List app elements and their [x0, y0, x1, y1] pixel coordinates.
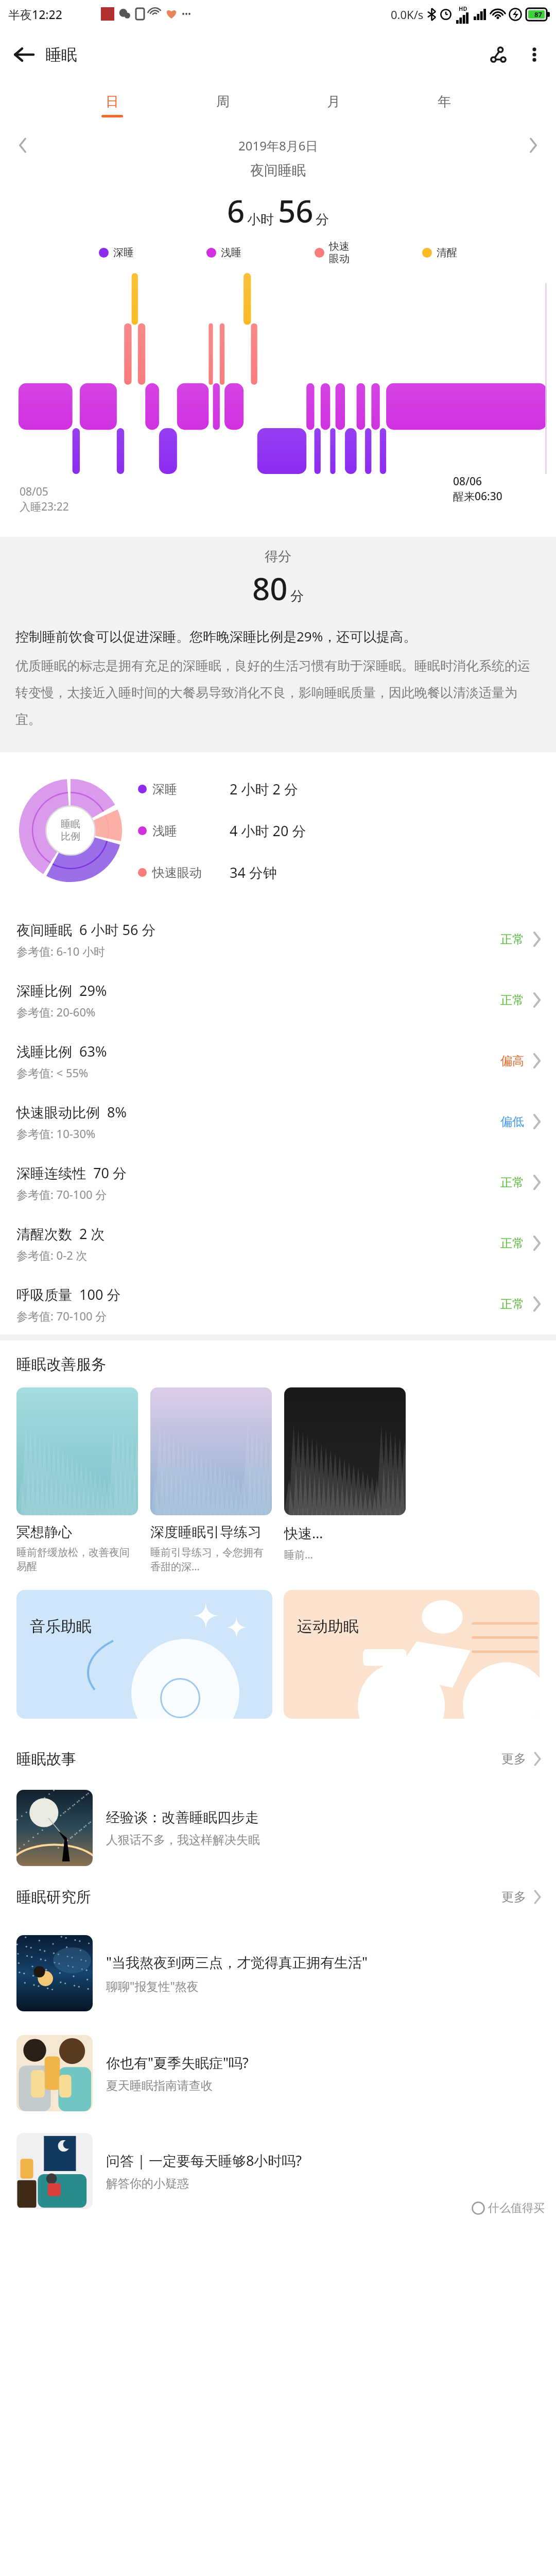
staticText: 参考值: 10-30%	[16, 1126, 96, 1141]
staticText: 偏高	[500, 1054, 524, 1069]
staticText: 睡前…	[284, 1548, 313, 1562]
button[interactable]: 睡眠研究所	[0, 1874, 556, 1920]
staticText: 80	[252, 567, 288, 609]
staticText: 更多	[501, 1751, 526, 1767]
staticText: 夜间睡眠	[250, 162, 306, 179]
button[interactable]: 睡眠故事	[0, 1736, 556, 1782]
button[interactable]: "当我熬夜到两三点，才觉得真正拥有生活"	[0, 1920, 556, 2027]
button[interactable]: 夜间睡眠 6 小时 56 分	[0, 909, 556, 970]
button[interactable]: 浅睡比例 63%	[0, 1030, 556, 1091]
staticText: 深睡比例 29%	[16, 981, 107, 1000]
button[interactable]: 年	[389, 81, 499, 129]
button[interactable]: Previous day	[8, 131, 37, 160]
staticText: 分	[290, 588, 304, 605]
staticText: 参考值: 6-10 小时	[16, 943, 106, 959]
staticText: 半夜12:22	[8, 6, 62, 22]
staticText: 更多	[501, 1889, 526, 1905]
staticText: 参考值: < 55%	[16, 1065, 89, 1080]
staticText: 56	[278, 190, 314, 232]
button[interactable]	[16, 1387, 138, 1515]
button[interactable]: 问答 | 一定要每天睡够8小时吗?	[0, 2120, 556, 2223]
staticText: 运动助眠	[297, 1617, 359, 1636]
staticText: 正常	[500, 1297, 524, 1312]
staticText: 清醒	[437, 246, 457, 259]
staticText: 解答你的小疑惑	[106, 2176, 189, 2191]
staticText: 正常	[500, 1236, 524, 1251]
staticText: 2 小时 2 分	[230, 779, 298, 799]
button[interactable]: 周	[167, 81, 278, 129]
staticText: 周	[216, 93, 230, 110]
staticText: 4 小时 20 分	[230, 821, 306, 840]
button[interactable]: Back	[4, 35, 43, 74]
staticText: 清醒次数 2 次	[16, 1224, 105, 1243]
button[interactable]: More options	[518, 38, 551, 71]
staticText: 什么值得买	[488, 2201, 545, 2215]
staticText: 参考值: 0-2 次	[16, 1247, 88, 1263]
staticText: 冥想静心	[16, 1523, 72, 1541]
staticText: HD	[459, 5, 467, 12]
button[interactable]: 你也有"夏季失眠症"吗?	[0, 2027, 556, 2120]
staticText: 你也有"夏季失眠症"吗?	[106, 2053, 249, 2072]
staticText: 浅睡比例 63%	[16, 1042, 107, 1061]
staticText: 睡眠	[61, 818, 80, 831]
staticText: 正常	[500, 932, 524, 947]
button[interactable]: Next day	[519, 131, 548, 160]
button[interactable]	[150, 1387, 272, 1515]
staticText: •••	[182, 8, 192, 20]
staticText: 浅睡	[152, 823, 230, 839]
staticText: 深睡	[152, 782, 230, 797]
staticText: 经验谈：改善睡眠四步走	[106, 1809, 259, 1826]
staticText: 深睡	[113, 246, 134, 259]
button[interactable]: Share	[479, 35, 518, 74]
button[interactable]: 呼吸质量 100 分	[0, 1274, 556, 1334]
staticText: 分	[316, 211, 329, 228]
button[interactable]	[284, 1387, 406, 1515]
button[interactable]: 日	[57, 81, 167, 129]
staticText: 参考值: 70-100 分	[16, 1308, 107, 1324]
staticText: 参考值: 20-60%	[16, 1004, 96, 1020]
staticText: 快速 眼动	[329, 240, 350, 265]
staticText: 睡前引导练习，令您拥有香甜的深…	[150, 1546, 272, 1573]
staticText: 6	[227, 190, 245, 232]
staticText: 优质睡眠的标志是拥有充足的深睡眠，良好的生活习惯有助于深睡眠。睡眠时消化系统的运…	[15, 658, 541, 727]
staticText: "当我熬夜到两三点，才觉得真正拥有生活"	[106, 1953, 368, 1972]
staticText: 0.0K/s	[391, 7, 424, 22]
staticText: 得分	[0, 548, 556, 565]
button[interactable]: 经验谈：改善睡眠四步走	[0, 1782, 556, 1874]
staticText: 快速眼动比例 8%	[16, 1103, 127, 1122]
staticText: 34 分钟	[230, 863, 277, 882]
staticText: 深度睡眠引导练习	[150, 1523, 262, 1541]
staticText: 睡眠	[45, 45, 77, 65]
staticText: 睡眠故事	[16, 1750, 501, 1769]
staticText: 月	[327, 93, 340, 110]
staticText: 正常	[500, 993, 524, 1008]
staticText: 夜间睡眠 6 小时 56 分	[16, 920, 156, 939]
staticText: 睡前舒缓放松，改善夜间易醒	[16, 1546, 138, 1573]
staticText: 深睡连续性 70 分	[16, 1163, 127, 1182]
staticText: 问答 | 一定要每天睡够8小时吗?	[106, 2151, 302, 2170]
button[interactable]: 音乐助眠	[16, 1590, 272, 1719]
staticText: 08/06	[453, 474, 482, 489]
staticText: 年	[438, 93, 451, 110]
button[interactable]: 快速眼动比例 8%	[0, 1091, 556, 1152]
button[interactable]: 深睡比例 29%	[0, 970, 556, 1030]
staticText: 睡眠改善服务	[16, 1355, 106, 1374]
button[interactable]: 月	[278, 81, 389, 129]
staticText: 控制睡前饮食可以促进深睡。您昨晚深睡比例是29%，还可以提高。	[15, 627, 541, 646]
staticText: 睡眠研究所	[16, 1888, 501, 1907]
staticText: 正常	[500, 1175, 524, 1190]
button[interactable]: 运动助眠	[284, 1590, 540, 1719]
staticText: 比例	[61, 831, 80, 843]
staticText: 聊聊"报复性"熬夜	[106, 1978, 199, 1994]
staticText: 浅睡	[221, 246, 241, 259]
staticText: 醒来06:30	[453, 489, 502, 504]
button[interactable]: 清醒次数 2 次	[0, 1213, 556, 1274]
staticText: 音乐助眠	[30, 1617, 92, 1636]
staticText: 夏天睡眠指南请查收	[106, 2078, 213, 2093]
staticText: 入睡23:22	[20, 499, 69, 514]
staticText: 偏低	[500, 1114, 524, 1129]
staticText: 日	[106, 93, 119, 110]
button[interactable]: 深睡连续性 70 分	[0, 1152, 556, 1213]
staticText: 呼吸质量 100 分	[16, 1285, 121, 1304]
staticText: 快速…	[284, 1523, 323, 1543]
